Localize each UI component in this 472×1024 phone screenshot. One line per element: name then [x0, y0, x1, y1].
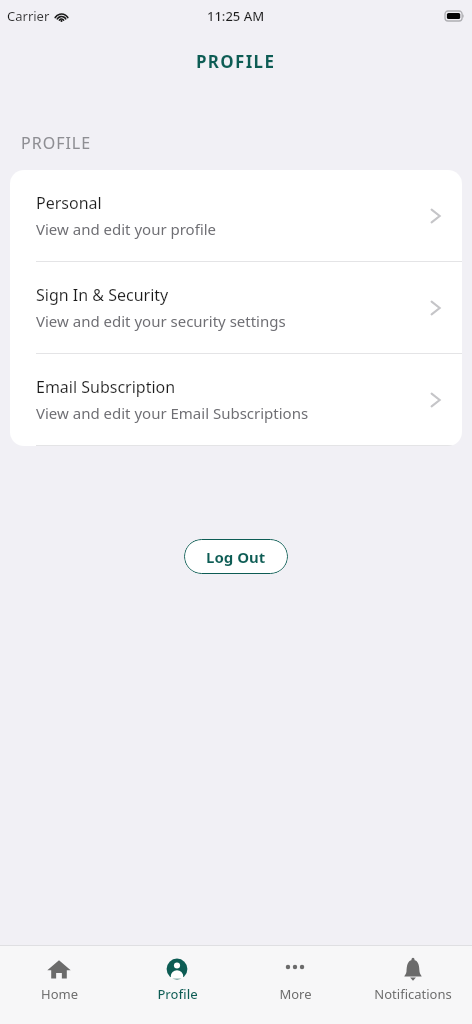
button[interactable]: Notifications	[354, 946, 472, 1003]
staticText: View and edit your security settings	[36, 311, 286, 331]
button[interactable]: Home	[0, 946, 118, 1003]
staticText: Carrier	[7, 7, 50, 25]
staticText: Log Out	[206, 547, 266, 567]
staticText: Profile	[157, 985, 198, 1003]
button[interactable]: Email Subscription	[10, 354, 462, 445]
button[interactable]: Profile	[118, 946, 236, 1003]
button[interactable]: Log Out	[184, 539, 288, 574]
staticText: More	[279, 985, 312, 1003]
staticText: PROFILE	[21, 132, 92, 154]
staticText: PROFILE	[196, 50, 276, 73]
staticText: 11:25 AM	[207, 7, 265, 25]
button[interactable]: Sign In & Security	[10, 262, 462, 353]
staticText: Sign In & Security	[36, 284, 169, 306]
staticText: Email Subscription	[36, 376, 176, 398]
staticText: View and edit your profile	[36, 219, 217, 239]
button[interactable]: Personal	[10, 170, 462, 261]
button[interactable]: More	[236, 946, 354, 1003]
staticText: Home	[41, 985, 78, 1003]
staticText: Notifications	[374, 985, 452, 1003]
staticText: Personal	[36, 192, 102, 214]
staticText: View and edit your Email Subscriptions	[36, 403, 309, 423]
